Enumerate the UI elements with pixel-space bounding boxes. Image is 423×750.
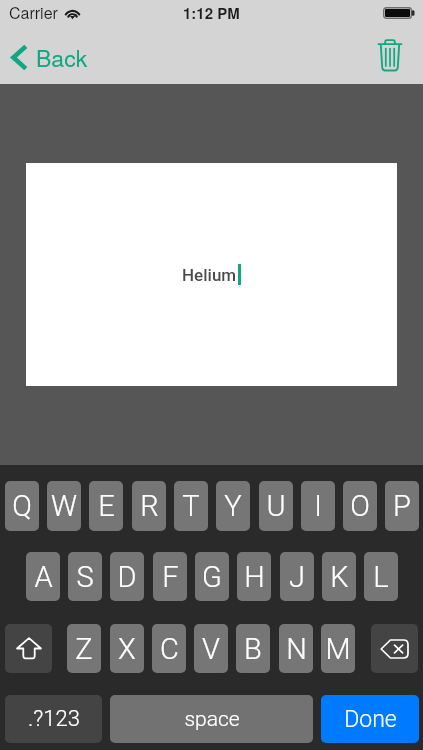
button[interactable]: N <box>279 624 313 673</box>
button[interactable]: E <box>89 481 123 531</box>
staticText: G <box>202 560 222 594</box>
button[interactable]: W <box>47 481 81 531</box>
staticText: space <box>184 707 240 732</box>
staticText: D <box>117 560 137 594</box>
staticText: 1:12 PM <box>183 2 240 23</box>
button[interactable]: J <box>280 552 314 601</box>
staticText: W <box>51 489 77 523</box>
staticText: L <box>373 560 389 594</box>
button[interactable]: O <box>343 481 377 531</box>
staticText: N <box>286 632 307 666</box>
staticText: Helium <box>182 265 237 285</box>
button[interactable]: T <box>174 481 208 531</box>
button[interactable]: P <box>385 481 419 531</box>
staticText: A <box>34 560 53 594</box>
button[interactable]: Back <box>0 36 102 79</box>
staticText: Carrier <box>9 1 58 24</box>
staticText: O <box>350 489 370 523</box>
staticText: B <box>244 632 262 666</box>
staticText: Y <box>224 489 242 523</box>
staticText: K <box>330 560 349 594</box>
button[interactable]: F <box>153 552 187 601</box>
staticText: U <box>266 489 286 523</box>
button[interactable]: Q <box>5 481 39 531</box>
button[interactable]: M <box>321 624 355 673</box>
button[interactable]: Y <box>216 481 250 531</box>
staticText: I <box>314 489 322 523</box>
button[interactable]: L <box>364 552 398 601</box>
button[interactable]: space <box>110 695 313 743</box>
button[interactable]: K <box>322 552 356 601</box>
button[interactable]: H <box>237 552 271 601</box>
button[interactable]: Z <box>67 624 101 673</box>
button[interactable]: Done <box>321 695 419 743</box>
staticText: Done <box>344 706 397 733</box>
button[interactable]: Delete <box>368 35 412 79</box>
staticText: F <box>162 560 179 594</box>
button[interactable]: D <box>110 552 144 601</box>
staticText: C <box>160 632 179 666</box>
staticText: Z <box>75 632 93 666</box>
button[interactable]: Helium <box>26 163 397 386</box>
staticText: H <box>244 560 265 594</box>
staticText: P <box>393 489 411 523</box>
button[interactable]: I <box>301 481 335 531</box>
button[interactable]: .?123 <box>5 695 102 743</box>
button[interactable]: A <box>26 552 60 601</box>
button[interactable]: Backspace <box>371 624 418 673</box>
button[interactable]: S <box>68 552 102 601</box>
button[interactable]: R <box>132 481 166 531</box>
staticText: R <box>140 489 159 523</box>
button[interactable]: Shift <box>5 624 52 673</box>
button[interactable]: C <box>152 624 186 673</box>
button[interactable]: V <box>194 624 228 673</box>
staticText: E <box>98 489 115 523</box>
button[interactable]: U <box>259 481 293 531</box>
staticText: X <box>118 632 136 666</box>
button[interactable]: G <box>195 552 229 601</box>
staticText: J <box>289 560 305 594</box>
staticText: S <box>76 560 94 594</box>
staticText: V <box>202 632 220 666</box>
staticText: M <box>325 632 351 666</box>
button[interactable]: B <box>236 624 270 673</box>
staticText: Back <box>36 41 88 74</box>
staticText: .?123 <box>28 706 80 732</box>
button[interactable]: X <box>110 624 144 673</box>
staticText: T <box>182 489 200 523</box>
staticText: Q <box>12 489 32 523</box>
